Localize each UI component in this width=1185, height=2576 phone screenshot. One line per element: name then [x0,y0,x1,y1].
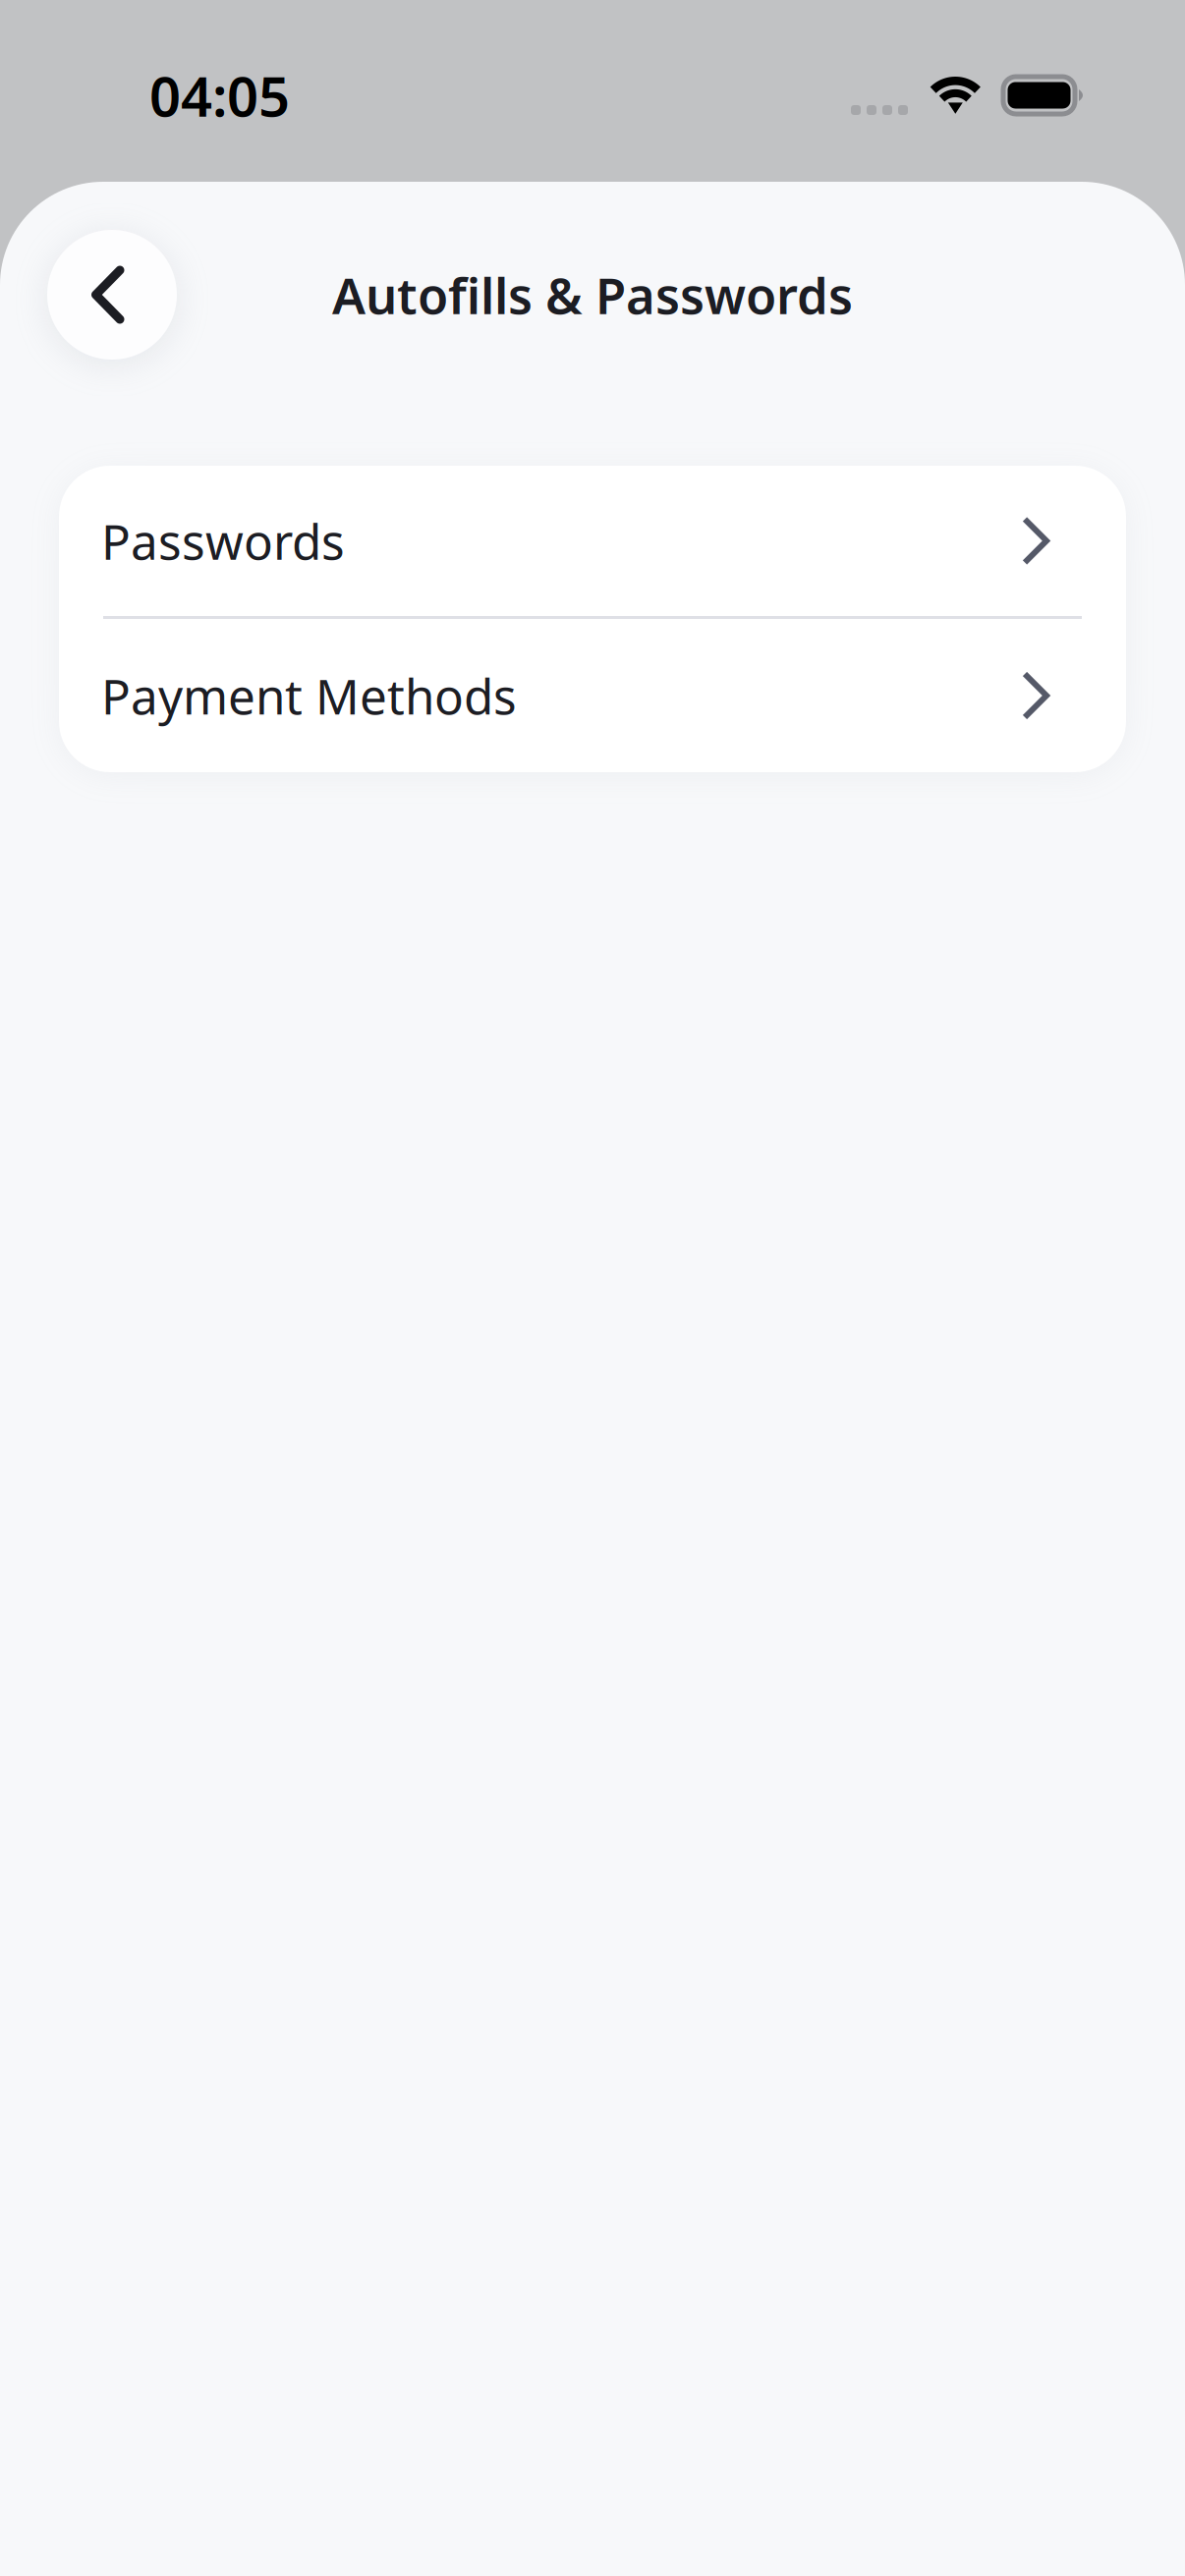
staticText: Payment Methods [101,663,517,728]
staticText: Autofills & Passwords [332,262,853,328]
button[interactable]: Back [47,230,177,360]
button[interactable]: Passwords [59,466,1126,616]
button[interactable]: Payment Methods [59,619,1126,772]
staticText: Passwords [101,509,345,573]
staticText: 04:05 [149,59,290,132]
